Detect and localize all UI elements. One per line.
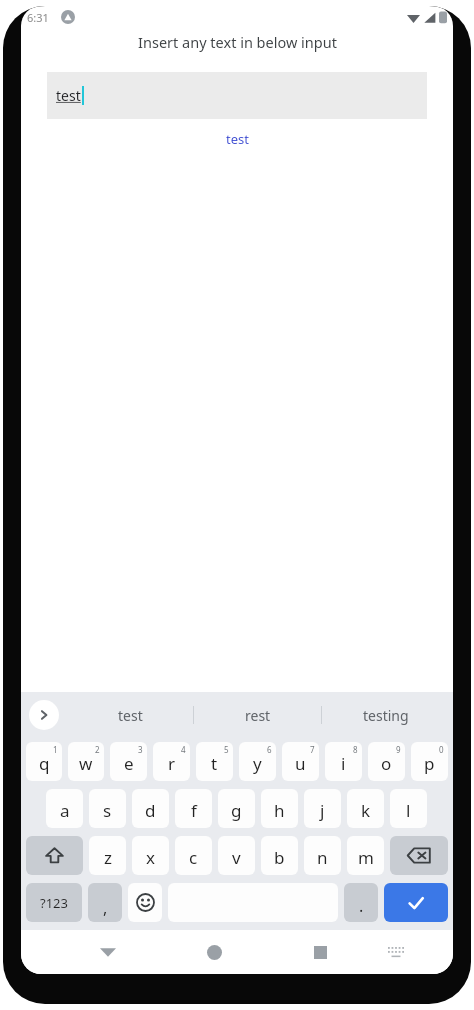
staticText: k bbox=[361, 799, 371, 822]
button[interactable]: s bbox=[89, 789, 126, 828]
staticText: t bbox=[211, 752, 218, 775]
staticText: 8 bbox=[353, 744, 358, 755]
staticText: . bbox=[359, 895, 364, 917]
button[interactable]: Backspace bbox=[390, 836, 448, 875]
staticText: r bbox=[168, 752, 176, 775]
button[interactable]: p bbox=[411, 742, 448, 781]
button[interactable]: u bbox=[282, 742, 319, 781]
button[interactable]: Emoji bbox=[128, 883, 162, 922]
staticText: test bbox=[118, 706, 143, 725]
button[interactable]: Enter bbox=[384, 883, 448, 922]
button[interactable]: , bbox=[88, 883, 122, 922]
button[interactable]: x bbox=[132, 836, 169, 875]
button[interactable]: Home bbox=[194, 932, 234, 972]
button[interactable]: ?123 bbox=[26, 883, 82, 922]
staticText: q bbox=[39, 752, 50, 775]
button[interactable]: f bbox=[175, 789, 212, 828]
button[interactable]: z bbox=[89, 836, 126, 875]
button[interactable]: i bbox=[325, 742, 362, 781]
staticText: 7 bbox=[310, 744, 315, 755]
staticText: o bbox=[381, 752, 392, 775]
button[interactable]: r bbox=[153, 742, 190, 781]
staticText: , bbox=[103, 897, 108, 919]
button[interactable]: n bbox=[304, 836, 341, 875]
staticText: n bbox=[317, 846, 328, 869]
staticText: g bbox=[231, 799, 242, 822]
button[interactable]: w bbox=[68, 742, 104, 781]
staticText: 2 bbox=[95, 744, 100, 755]
staticText: test bbox=[56, 86, 81, 105]
button[interactable]: d bbox=[132, 789, 169, 828]
staticText: v bbox=[232, 846, 241, 869]
staticText: x bbox=[146, 846, 155, 869]
button[interactable]: c bbox=[175, 836, 212, 875]
staticText: d bbox=[145, 799, 156, 822]
button[interactable]: e bbox=[110, 742, 147, 781]
staticText: rest bbox=[245, 706, 271, 725]
button[interactable]: Back bbox=[88, 932, 128, 972]
staticText: 1 bbox=[53, 744, 58, 755]
button[interactable]: Recents bbox=[300, 932, 340, 972]
button[interactable]: test bbox=[47, 72, 427, 119]
button[interactable]: . bbox=[344, 883, 378, 922]
button[interactable]: Shift bbox=[26, 836, 83, 875]
staticText: 3 bbox=[138, 744, 143, 755]
staticText: a bbox=[60, 799, 70, 822]
staticText: i bbox=[341, 752, 346, 775]
staticText: y bbox=[253, 752, 262, 775]
button[interactable]: q bbox=[26, 742, 62, 781]
staticText: m bbox=[358, 846, 374, 869]
button[interactable]: t bbox=[196, 742, 233, 781]
staticText: j bbox=[320, 799, 325, 822]
staticText: ?123 bbox=[40, 894, 68, 912]
staticText: f bbox=[191, 799, 197, 822]
button[interactable]: h bbox=[261, 789, 298, 828]
button[interactable]: g bbox=[218, 789, 255, 828]
staticText: 6 bbox=[267, 744, 272, 755]
staticText: Insert any text in below input bbox=[138, 32, 337, 52]
staticText: 0 bbox=[439, 744, 444, 755]
staticText: b bbox=[274, 846, 285, 869]
staticText: h bbox=[274, 799, 285, 822]
button[interactable]: k bbox=[347, 789, 384, 828]
button[interactable]: test bbox=[67, 692, 193, 738]
staticText: l bbox=[406, 799, 411, 822]
button[interactable]: test bbox=[226, 130, 249, 148]
staticText: c bbox=[189, 846, 198, 869]
staticText: s bbox=[103, 799, 112, 822]
button[interactable]: o bbox=[368, 742, 405, 781]
button[interactable]: a bbox=[46, 789, 83, 828]
button[interactable]: More suggestions bbox=[29, 700, 59, 730]
button[interactable]: b bbox=[261, 836, 298, 875]
button[interactable]: testing bbox=[322, 692, 449, 738]
staticText: 4 bbox=[181, 744, 186, 755]
button[interactable]: v bbox=[218, 836, 255, 875]
staticText: 6:31 bbox=[27, 10, 49, 25]
staticText: w bbox=[79, 752, 93, 775]
button[interactable]: rest bbox=[194, 692, 321, 738]
button[interactable]: l bbox=[390, 789, 427, 828]
staticText: e bbox=[124, 752, 134, 775]
staticText: 9 bbox=[396, 744, 401, 755]
staticText: z bbox=[104, 846, 112, 869]
staticText: testing bbox=[363, 706, 409, 725]
staticText: u bbox=[295, 752, 306, 775]
staticText: p bbox=[424, 752, 435, 775]
button[interactable]: m bbox=[347, 836, 384, 875]
button[interactable]: j bbox=[304, 789, 341, 828]
staticText: 5 bbox=[224, 744, 229, 755]
button[interactable]: y bbox=[239, 742, 276, 781]
button[interactable]: Switch keyboard bbox=[378, 934, 414, 970]
